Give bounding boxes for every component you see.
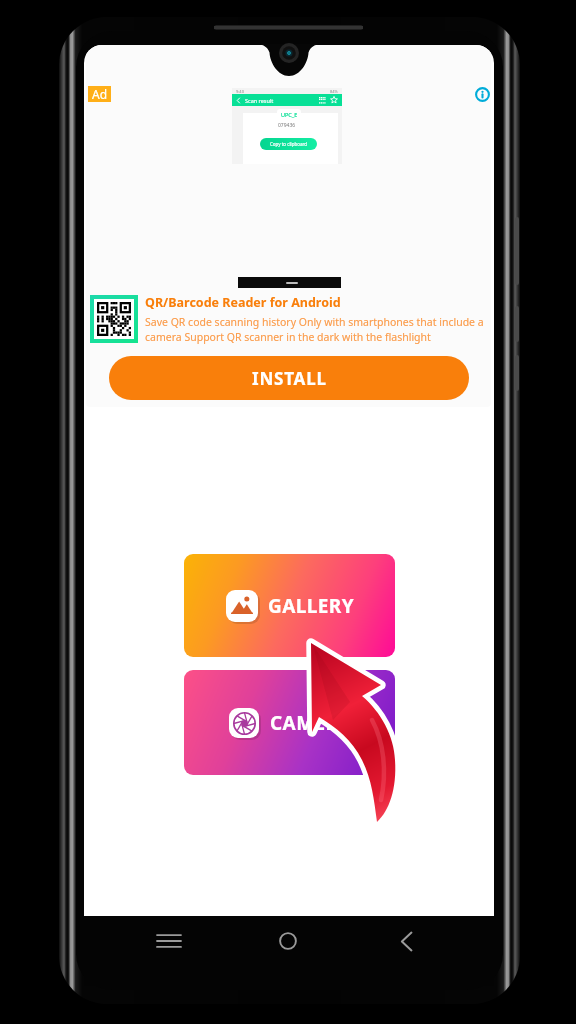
button[interactable]: Ad info (473, 85, 491, 103)
button[interactable]: Recent apps (146, 918, 192, 964)
staticText: 079436 (278, 122, 296, 129)
staticText: Scan result (245, 97, 274, 104)
staticText: GALLERY (268, 593, 354, 619)
staticText: INSTALL (252, 367, 327, 390)
button[interactable]: INSTALL (109, 356, 469, 400)
staticText: QR/Barcode Reader for Android (145, 294, 341, 311)
button[interactable]: GALLERY (184, 554, 395, 657)
button[interactable]: Back (383, 918, 429, 964)
staticText: camera Support QR scanner in the dark wi… (145, 330, 431, 344)
staticText: 84% (330, 89, 338, 94)
staticText: UPC_E (281, 111, 298, 118)
button[interactable]: Ad (88, 86, 111, 102)
button[interactable]: Home (265, 918, 311, 964)
staticText: 9:40 (236, 89, 244, 94)
staticText: Save QR code scanning history Only with … (145, 315, 484, 329)
button[interactable]: CAMERA (184, 670, 395, 775)
staticText: Copy to clipboard (270, 141, 308, 147)
staticText: Ad (92, 86, 108, 102)
staticText: CAMERA (270, 710, 352, 736)
